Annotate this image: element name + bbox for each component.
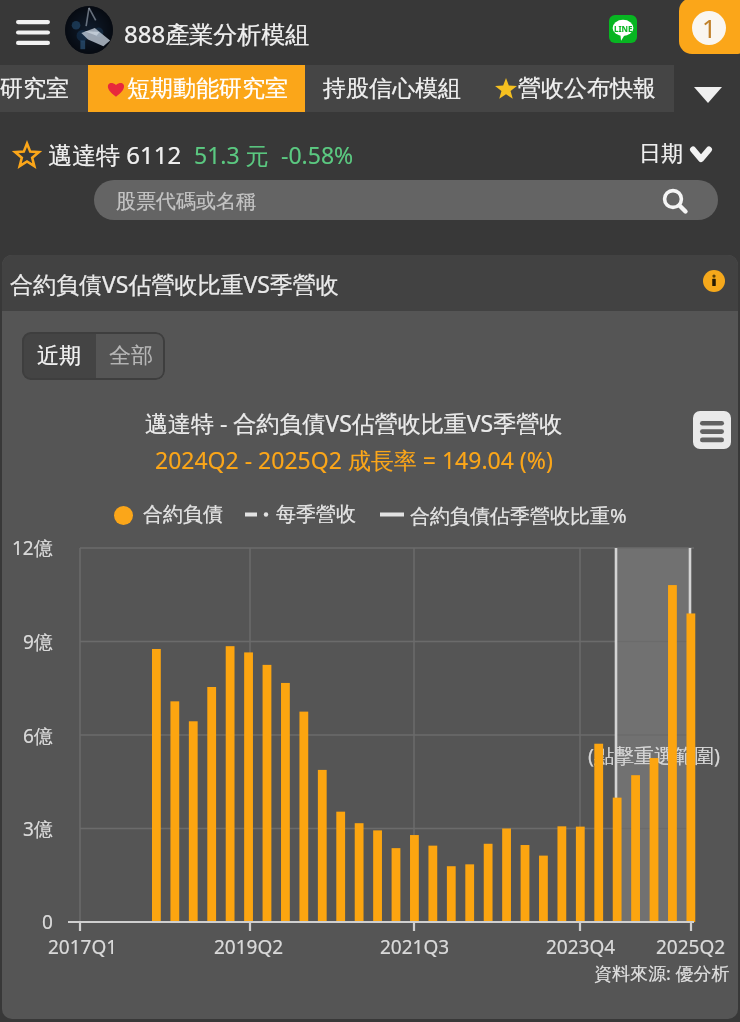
staticText: 合約負債VS佔營收比重VS季營收 bbox=[10, 268, 339, 299]
button[interactable]: 近期 bbox=[22, 332, 96, 380]
button[interactable]: Info bbox=[703, 270, 725, 292]
staticText: -0.58% bbox=[281, 139, 354, 170]
staticText: 日期 bbox=[639, 140, 683, 168]
staticText: 888產業分析模組 bbox=[124, 17, 310, 50]
staticText: 合約負債 bbox=[143, 502, 223, 527]
button[interactable]: 合約負債VS佔營收比重VS季營收 bbox=[2, 255, 738, 311]
staticText: 3億 bbox=[23, 816, 53, 842]
staticText: 12億 bbox=[12, 535, 53, 561]
button[interactable]: LINE bbox=[609, 15, 637, 43]
staticText: 9億 bbox=[23, 629, 53, 655]
button[interactable]: More tabs bbox=[686, 73, 730, 117]
button[interactable]: 股票代碼或名稱 bbox=[94, 180, 718, 220]
button[interactable]: 短期動能研究室 bbox=[88, 65, 305, 112]
staticText: 近期 bbox=[37, 342, 81, 370]
button[interactable]: 營收公布快報 bbox=[494, 65, 656, 112]
staticText: 短期動能研究室 bbox=[127, 74, 288, 103]
staticText: 資料來源: 優分析 bbox=[594, 961, 730, 986]
staticText: 2024Q2 - 2025Q2 成長率 = 149.04 (%) bbox=[155, 444, 553, 475]
button[interactable]: Chart menu bbox=[693, 411, 731, 449]
staticText: 合約負債佔季營收比重% bbox=[410, 502, 627, 529]
staticText: 股票代碼或名稱 bbox=[116, 189, 256, 214]
button[interactable]: Notifications bbox=[679, 0, 740, 54]
staticText: 全部 bbox=[109, 342, 153, 370]
staticText: 0 bbox=[42, 909, 53, 935]
staticText: 1 bbox=[702, 11, 717, 45]
staticText: 2023Q4 bbox=[546, 934, 616, 958]
staticText: 2017Q1 bbox=[48, 934, 118, 958]
staticText: 51.3 元 bbox=[194, 139, 269, 170]
staticText: 研究室 bbox=[0, 74, 69, 103]
button[interactable]: 研究室 bbox=[0, 65, 69, 112]
staticText: (點擊重選範圍) bbox=[588, 742, 720, 769]
staticText: LINE bbox=[614, 23, 633, 34]
staticText: 邁達特 6112 bbox=[48, 138, 182, 171]
staticText: 營收公布快報 bbox=[518, 74, 656, 103]
staticText: 6億 bbox=[23, 723, 53, 749]
staticText: 2025Q2 bbox=[656, 934, 726, 958]
staticText: 持股信心模組 bbox=[323, 74, 461, 103]
button[interactable]: Menu bbox=[6, 0, 60, 65]
staticText: 邁達特 - 合約負債VS佔營收比重VS季營收 bbox=[145, 407, 563, 438]
button[interactable]: 日期 bbox=[639, 139, 711, 169]
button[interactable]: 全部 bbox=[96, 332, 165, 380]
button[interactable]: 持股信心模組 bbox=[323, 65, 461, 112]
button[interactable]: Profile bbox=[65, 6, 113, 54]
staticText: 每季營收 bbox=[276, 502, 356, 527]
staticText: 2019Q2 bbox=[214, 934, 284, 958]
button[interactable]: Favourite bbox=[12, 140, 42, 170]
staticText: 2021Q3 bbox=[380, 934, 450, 958]
